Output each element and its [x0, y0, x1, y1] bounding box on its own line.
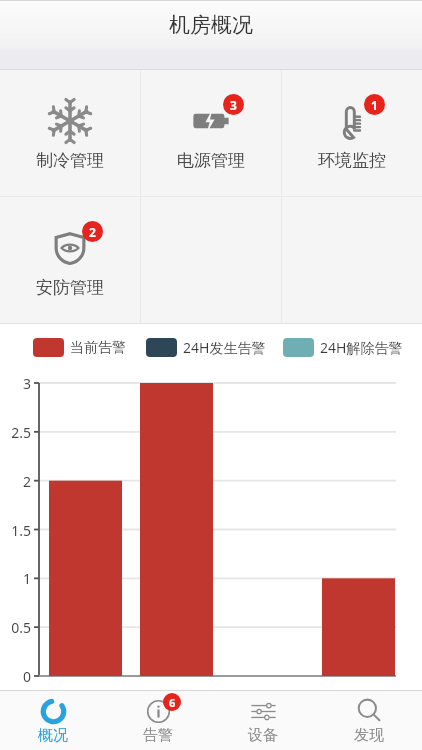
staticText: 24H发生告警 — [183, 338, 266, 357]
staticText: 1 — [0, 569, 31, 588]
button[interactable]: 制冷管理 — [0, 70, 140, 196]
staticText: 安防管理 — [36, 277, 104, 298]
staticText: 告警 — [143, 726, 173, 745]
staticText: 1.5 — [0, 521, 31, 540]
staticText: 概况 — [38, 726, 68, 745]
staticText: 1 — [371, 97, 378, 113]
staticText: 2.5 — [0, 423, 31, 442]
staticText: 0 — [0, 667, 31, 686]
staticText: 2 — [0, 472, 31, 491]
button[interactable]: 24H发生告警 — [146, 338, 266, 357]
staticText: 机房概况 — [169, 12, 253, 38]
staticText: 6 — [169, 695, 176, 710]
staticText: 2 — [89, 224, 96, 240]
staticText: 设备 — [248, 726, 278, 745]
staticText: 当前告警 — [70, 339, 126, 357]
staticText: 环境监控 — [318, 150, 386, 171]
button[interactable]: 3 — [141, 70, 281, 196]
button[interactable]: 24H解除告警 — [283, 338, 403, 357]
button[interactable]: 发现 — [316, 691, 422, 750]
staticText: 3 — [0, 374, 31, 393]
button[interactable]: 概况 — [0, 691, 105, 750]
staticText: 24H解除告警 — [320, 338, 403, 357]
button[interactable]: 当前告警 — [33, 338, 126, 357]
button[interactable]: 告警 — [105, 691, 210, 750]
staticText: 发现 — [354, 726, 384, 745]
staticText: 0.5 — [0, 618, 31, 637]
button[interactable]: 1 — [282, 70, 422, 196]
staticText: 3 — [230, 97, 237, 113]
staticText: 制冷管理 — [36, 150, 104, 171]
staticText: 电源管理 — [177, 150, 245, 171]
button[interactable]: 2 — [0, 197, 140, 323]
button[interactable]: 设备 — [210, 691, 316, 750]
